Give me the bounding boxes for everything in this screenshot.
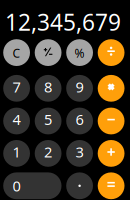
staticText: 4 <box>13 110 21 129</box>
staticText: 1 <box>13 142 21 162</box>
button[interactable]: Equals <box>98 172 124 199</box>
staticText: 5 <box>44 110 52 129</box>
button[interactable]: 5 <box>35 108 61 134</box>
button[interactable]: Subtract <box>98 108 124 134</box>
staticText: 3 <box>76 142 84 162</box>
staticText: % <box>75 45 85 61</box>
staticText: 7 <box>13 77 21 96</box>
button[interactable]: 7 <box>3 75 30 102</box>
staticText: 6 <box>76 110 84 129</box>
button[interactable]: Divide <box>98 39 124 66</box>
button[interactable]: 1 <box>3 140 30 167</box>
button[interactable]: Multiply <box>98 75 124 102</box>
staticText: 9 <box>76 77 84 96</box>
staticText: 2 <box>44 142 52 162</box>
button[interactable]: 9 <box>66 75 93 102</box>
staticText: 0 <box>13 176 21 196</box>
button[interactable]: 3 <box>66 140 93 167</box>
staticText: C <box>13 45 21 61</box>
button[interactable]: Decimal point <box>66 172 93 199</box>
button[interactable]: C <box>3 39 30 66</box>
staticText: 12,345,679 <box>5 7 121 37</box>
button[interactable]: 0 <box>3 172 61 199</box>
staticText: 8 <box>44 77 52 96</box>
button[interactable]: 6 <box>66 108 93 134</box>
button[interactable]: % <box>66 39 93 66</box>
button[interactable]: 4 <box>3 108 30 134</box>
button[interactable]: 2 <box>35 140 61 167</box>
button[interactable]: 8 <box>35 75 61 102</box>
button[interactable]: Add <box>98 140 124 167</box>
button[interactable]: Plus Minus <box>35 39 61 66</box>
